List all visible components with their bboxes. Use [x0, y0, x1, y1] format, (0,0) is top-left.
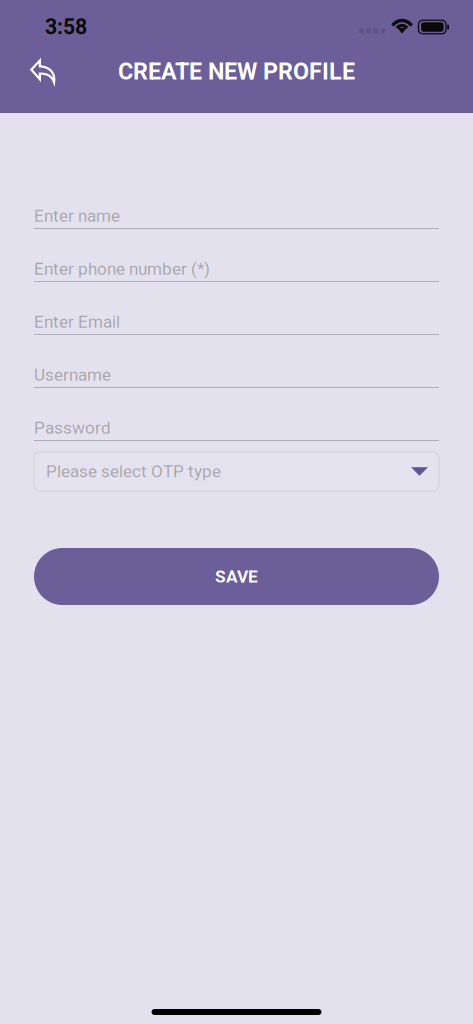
staticText: Enter name — [34, 206, 120, 226]
staticText: Please select OTP type — [46, 461, 221, 481]
staticText: 3:58 — [45, 14, 87, 39]
button[interactable]: Enter Email — [34, 305, 439, 335]
button[interactable]: Password — [34, 411, 439, 441]
staticText: Enter Email — [34, 312, 120, 332]
staticText: Username — [34, 365, 111, 385]
button[interactable]: Enter name — [34, 199, 439, 229]
staticText: CREATE NEW PROFILE — [118, 58, 355, 85]
button[interactable]: Enter phone number (*) — [34, 252, 439, 282]
button[interactable]: SAVE — [34, 548, 439, 605]
staticText: Enter phone number (*) — [34, 259, 210, 279]
staticText: SAVE — [215, 566, 258, 587]
staticText: Password — [34, 418, 111, 438]
button[interactable]: Back — [0, 49, 71, 94]
button[interactable]: Please select OTP type — [34, 452, 439, 491]
button[interactable]: Username — [34, 358, 439, 388]
